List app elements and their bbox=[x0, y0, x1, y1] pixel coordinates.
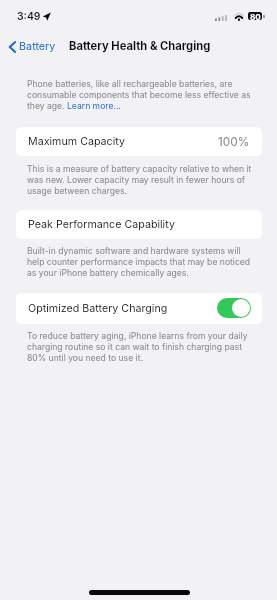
other: Wi-Fi bbox=[234, 13, 244, 21]
button[interactable]: Battery bbox=[9, 38, 56, 54]
staticText: Built-in dynamic software and hardware s… bbox=[27, 245, 253, 278]
staticText: 100% bbox=[218, 135, 250, 149]
staticText: 3:49 bbox=[17, 10, 41, 23]
staticText: Maximum Capacity bbox=[28, 135, 125, 148]
button[interactable]: Optimized Battery Charging bbox=[16, 293, 262, 324]
staticText: 80 bbox=[250, 12, 261, 20]
button[interactable]: Maximum Capacity bbox=[16, 127, 262, 156]
button[interactable]: Peak Performance Capability bbox=[16, 210, 262, 239]
staticText: Battery Health & Charging bbox=[69, 39, 211, 53]
button[interactable]: Optimized Battery Charging toggle, on bbox=[217, 298, 251, 318]
other: Cellular signal bbox=[215, 15, 227, 21]
staticText: To reduce battery aging, iPhone learns f… bbox=[27, 330, 253, 363]
staticText: Battery bbox=[19, 40, 56, 53]
staticText: Optimized Battery Charging bbox=[28, 302, 168, 315]
staticText: This is a measure of battery capacity re… bbox=[27, 163, 253, 196]
staticText: Phone batteries, like all rechargeable b… bbox=[27, 78, 253, 111]
other: Battery 80 percent bbox=[248, 12, 262, 20]
staticText: Peak Performance Capability bbox=[28, 218, 175, 231]
